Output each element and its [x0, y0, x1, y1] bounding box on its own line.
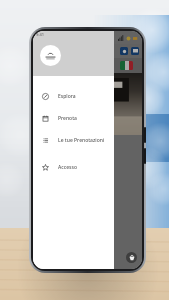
button[interactable]: Prenota — [33, 107, 114, 129]
button[interactable]: Notifiche — [120, 47, 128, 55]
button[interactable]: Lingua Italiano — [120, 61, 133, 70]
button[interactable]: Accesso — [33, 156, 114, 178]
staticText: Le tue Prenotazioni — [58, 137, 105, 144]
staticText: 9:41 — [36, 32, 44, 37]
button[interactable]: Le tue Prenotazioni — [33, 129, 114, 151]
staticText: Accesso — [58, 164, 77, 171]
button[interactable]: Messaggi — [131, 47, 139, 55]
button[interactable]: Carrello — [126, 252, 137, 263]
button[interactable]: Esplora — [33, 85, 114, 107]
staticText: Esplora — [58, 93, 76, 100]
button[interactable] — [40, 45, 61, 66]
staticText: Prenota — [58, 115, 77, 122]
